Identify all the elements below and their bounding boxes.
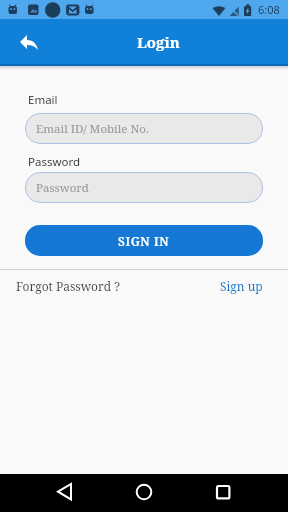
staticText: Password xyxy=(36,180,89,196)
staticText: Email xyxy=(28,92,58,108)
staticText: Password xyxy=(28,154,81,170)
button[interactable] xyxy=(46,474,84,512)
staticText: Login xyxy=(137,32,180,52)
button[interactable]: SIGN IN xyxy=(25,225,263,256)
staticText: Email ID/ Mobile No. xyxy=(36,121,149,137)
button[interactable]: Password xyxy=(25,172,263,203)
button[interactable] xyxy=(125,474,163,512)
staticText: SIGN IN xyxy=(118,233,170,249)
button[interactable] xyxy=(17,30,41,54)
button[interactable] xyxy=(204,474,242,512)
button[interactable]: Sign up xyxy=(220,278,263,294)
button[interactable]: Forgot Password ? xyxy=(16,278,120,294)
button[interactable]: Email ID/ Mobile No. xyxy=(25,113,263,144)
staticText: 6:08 xyxy=(258,2,280,17)
